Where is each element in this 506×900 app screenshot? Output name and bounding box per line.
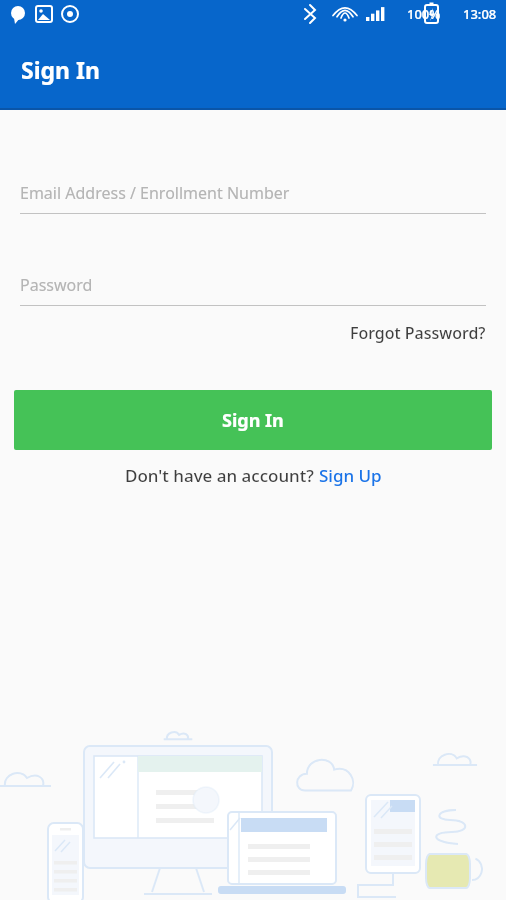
staticText: Sign In [21,54,100,85]
button[interactable]: Sign In [14,390,492,450]
staticText: Sign In [222,408,284,433]
button[interactable]: Sign Up [319,464,382,487]
staticText: Don't have an account? [125,464,319,487]
button[interactable]: Forgot Password? [348,316,488,350]
button[interactable]: Password [0,274,506,306]
staticText: Password [20,274,93,296]
staticText: 13:08 [463,5,497,23]
staticText: Forgot Password? [350,322,486,344]
staticText: 100% [407,5,441,23]
staticText: Sign Up [319,464,382,487]
button[interactable]: Email Address / Enrollment Number [0,182,506,214]
staticText: Email Address / Enrollment Number [20,182,290,204]
